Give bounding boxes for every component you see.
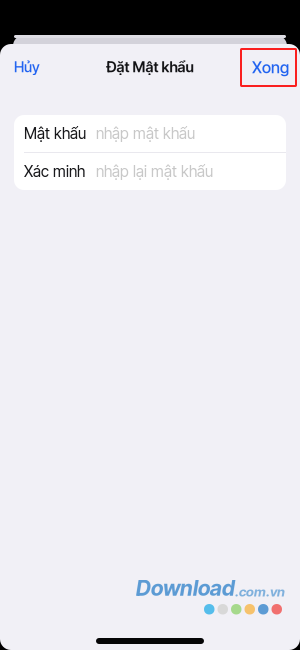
button[interactable]: Hủy xyxy=(0,48,56,86)
staticText: nhập mật khẩu xyxy=(96,124,195,143)
staticText: nhập lại mật khẩu xyxy=(96,162,213,181)
staticText: Đặt Mật khẩu xyxy=(106,58,193,76)
button[interactable]: Mật khẩu xyxy=(14,115,286,152)
staticText: .com.vn xyxy=(235,584,285,600)
staticText: Xong xyxy=(252,58,289,77)
button[interactable]: Xác minh xyxy=(14,153,286,190)
staticText: Mật khẩu xyxy=(24,124,86,143)
staticText: Xác minh xyxy=(24,162,85,181)
staticText: Hủy xyxy=(14,58,40,76)
button[interactable]: Xong xyxy=(241,49,296,86)
staticText: Download xyxy=(136,575,235,601)
